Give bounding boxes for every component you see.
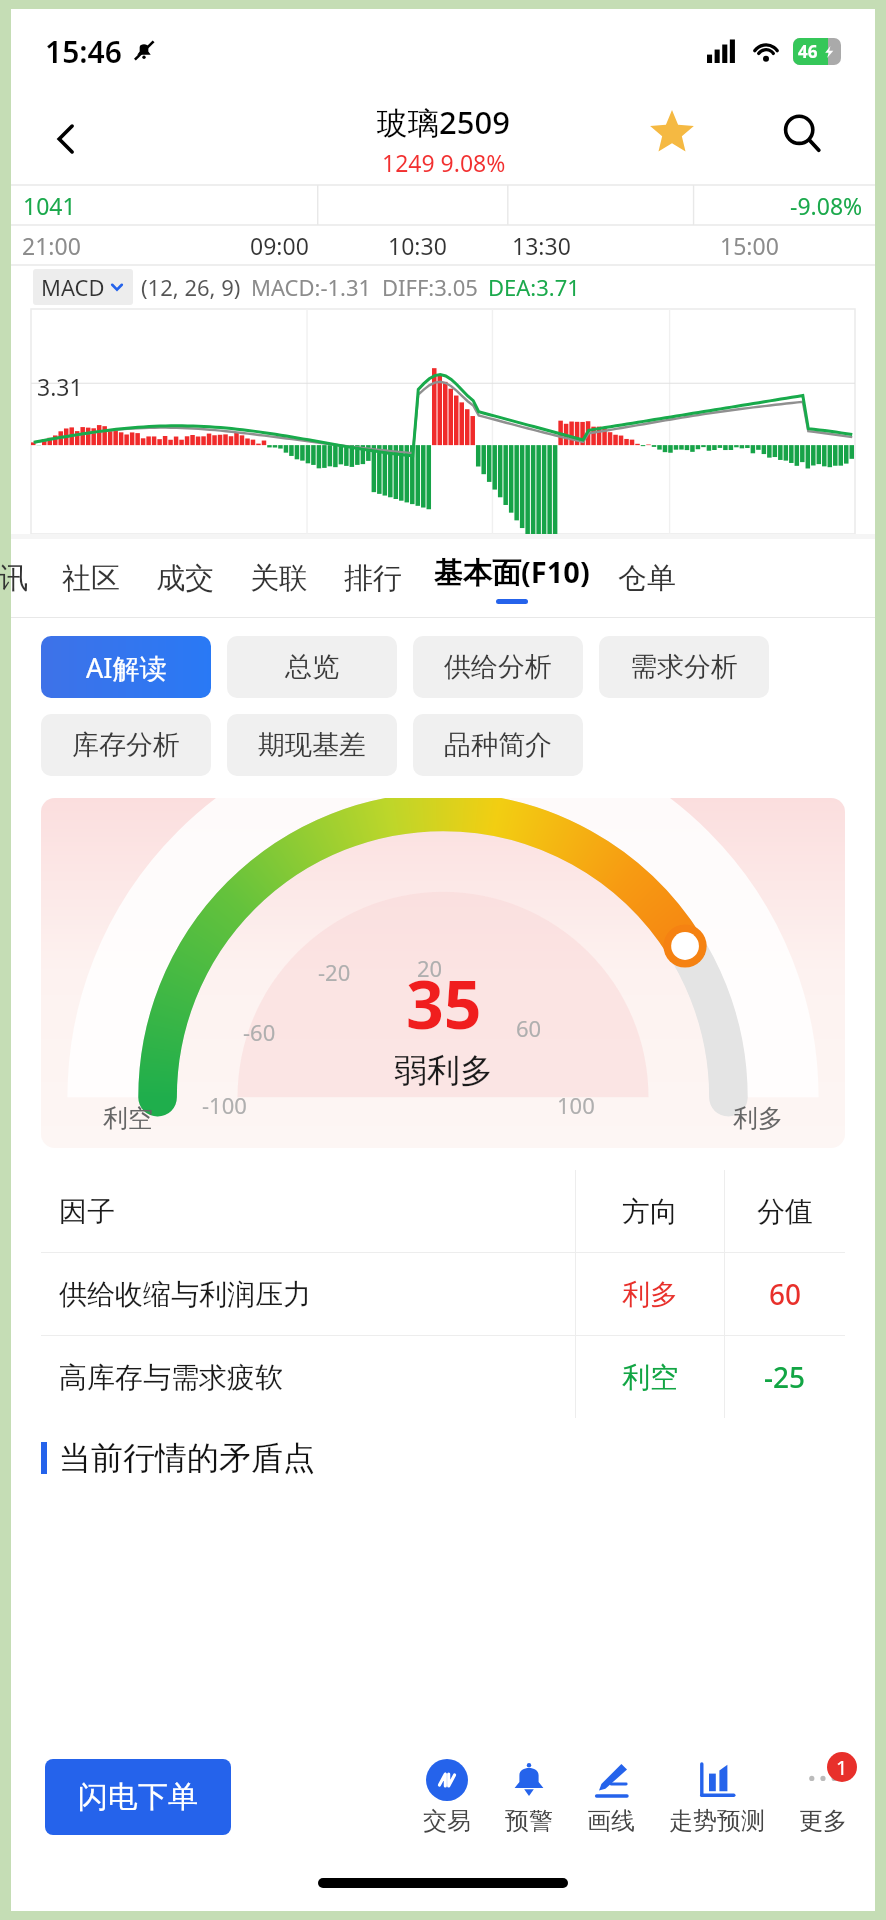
- staticText: 利多: [733, 1103, 783, 1134]
- button[interactable]: AI解读: [41, 636, 211, 698]
- staticText: -20: [318, 957, 351, 987]
- staticText: -25: [764, 1358, 806, 1396]
- staticText: 品种简介: [444, 728, 552, 762]
- other: More: [803, 1760, 843, 1800]
- staticText: 利多: [622, 1277, 678, 1312]
- staticText: 100: [557, 1090, 595, 1120]
- staticText: 因子: [59, 1194, 115, 1229]
- staticText: 分值: [757, 1194, 813, 1229]
- staticText: -60: [243, 1017, 276, 1047]
- button[interactable]: 基本面(F10): [420, 552, 604, 604]
- staticText: 15:46: [45, 31, 122, 72]
- staticText: AI解读: [86, 649, 167, 686]
- staticText: 利空: [103, 1103, 153, 1134]
- staticText: 供给分析: [444, 650, 552, 684]
- button[interactable]: 库存分析: [41, 714, 211, 776]
- button[interactable]: Draw line: [583, 1758, 639, 1836]
- button[interactable]: 因子: [41, 1170, 845, 1252]
- button[interactable]: Trade: [419, 1758, 475, 1836]
- button[interactable]: More: [795, 1758, 851, 1836]
- button[interactable]: 关联: [232, 550, 326, 607]
- staticText: 需求分析: [630, 650, 738, 684]
- staticText: 库存分析: [72, 728, 180, 762]
- button[interactable]: Search: [769, 100, 835, 166]
- staticText: 关联: [250, 560, 308, 597]
- staticText: 3.31: [37, 371, 83, 402]
- button[interactable]: Alerts: [501, 1758, 557, 1836]
- button[interactable]: 需求分析: [599, 636, 769, 698]
- staticText: 利空: [622, 1360, 678, 1395]
- staticText: 35: [406, 958, 482, 1048]
- staticText: -100: [202, 1090, 247, 1120]
- other: Trade: [426, 1759, 468, 1801]
- button[interactable]: Back: [33, 106, 99, 172]
- button[interactable]: 供给收缩与利润压力: [41, 1253, 845, 1335]
- staticText: 60: [516, 1013, 542, 1043]
- staticText: 基本面(F10): [434, 552, 590, 592]
- staticText: 玻璃2509: [377, 101, 510, 143]
- staticText: DIFF:3.05: [382, 272, 478, 302]
- staticText: 15:00: [720, 230, 779, 261]
- staticText: 交易: [423, 1806, 471, 1836]
- other: Alerts: [509, 1760, 549, 1800]
- staticText: 弱利多: [394, 1050, 493, 1092]
- staticText: 更多: [799, 1806, 847, 1836]
- button[interactable]: Favorite: [639, 100, 705, 166]
- staticText: 成交: [156, 560, 214, 597]
- staticText: 讯: [0, 560, 28, 597]
- staticText: 10:30: [388, 230, 447, 261]
- button[interactable]: 高库存与需求疲软: [41, 1336, 845, 1418]
- staticText: 社区: [62, 560, 120, 597]
- staticText: 预警: [505, 1806, 553, 1836]
- staticText: 09:00: [250, 230, 309, 261]
- button[interactable]: 品种简介: [413, 714, 583, 776]
- staticText: MACD: [41, 272, 105, 302]
- staticText: 方向: [622, 1194, 678, 1229]
- button[interactable]: 成交: [138, 550, 232, 607]
- staticText: 闪电下单: [78, 1778, 198, 1816]
- staticText: 走势预测: [669, 1806, 765, 1836]
- button[interactable]: MACD: [33, 269, 133, 305]
- button[interactable]: 排行: [326, 550, 420, 607]
- staticText: 21:00: [22, 230, 81, 261]
- staticText: 60: [769, 1275, 802, 1313]
- button[interactable]: 供给分析: [413, 636, 583, 698]
- staticText: 当前行情的矛盾点: [59, 1438, 315, 1478]
- staticText: 1249 9.08%: [382, 147, 506, 178]
- staticText: DEA:3.71: [488, 272, 580, 302]
- staticText: 13:30: [512, 230, 571, 261]
- staticText: 排行: [344, 560, 402, 597]
- staticText: 46: [798, 40, 818, 63]
- other: Draw line: [591, 1760, 631, 1800]
- button[interactable]: 期现基差: [227, 714, 397, 776]
- staticText: 1041: [23, 190, 76, 221]
- button[interactable]: Trend forecast: [665, 1758, 769, 1836]
- staticText: 高库存与需求疲软: [59, 1360, 283, 1395]
- button[interactable]: 总览: [227, 636, 397, 698]
- button[interactable]: 仓单: [604, 560, 690, 597]
- staticText: 供给收缩与利润压力: [59, 1277, 311, 1312]
- staticText: 总览: [285, 650, 339, 684]
- staticText: 期现基差: [258, 728, 366, 762]
- button[interactable]: 闪电下单: [45, 1759, 231, 1835]
- staticText: 1: [836, 1754, 848, 1781]
- button[interactable]: 社区: [44, 550, 138, 607]
- staticText: 仓单: [618, 560, 676, 597]
- staticText: -9.08%: [790, 190, 863, 221]
- staticText: 画线: [587, 1806, 635, 1836]
- staticText: 20: [417, 953, 443, 983]
- staticText: (12, 26, 9): [141, 272, 241, 302]
- other: Trend forecast: [697, 1760, 737, 1800]
- staticText: MACD:-1.31: [251, 272, 372, 302]
